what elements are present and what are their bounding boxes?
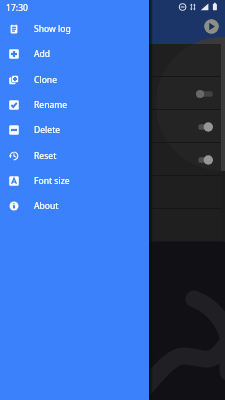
button[interactable]: Show log: [0, 16, 149, 41]
staticText: Add: [34, 48, 51, 60]
staticText: 17:30: [6, 2, 28, 14]
button[interactable]: [0, 110, 221, 143]
button[interactable]: Delete: [0, 117, 149, 142]
button[interactable]: [0, 176, 221, 209]
button[interactable]: Play: [204, 19, 219, 34]
button[interactable]: About: [0, 193, 149, 218]
button[interactable]: Rename: [0, 92, 149, 117]
button[interactable]: [0, 44, 221, 77]
button[interactable]: Font size: [0, 168, 149, 193]
staticText: Rename: [34, 99, 68, 111]
staticText: Font size: [34, 175, 70, 187]
staticText: Reset: [34, 150, 57, 162]
button[interactable]: Reset: [0, 143, 149, 168]
button[interactable]: [0, 77, 221, 110]
button[interactable]: [0, 143, 221, 176]
button[interactable]: Add: [0, 41, 149, 66]
staticText: Show log: [34, 23, 71, 35]
button[interactable]: [0, 209, 221, 242]
button[interactable]: Clone: [0, 67, 149, 92]
staticText: Clone: [34, 74, 58, 86]
staticText: Delete: [34, 124, 61, 136]
staticText: About: [34, 200, 59, 212]
